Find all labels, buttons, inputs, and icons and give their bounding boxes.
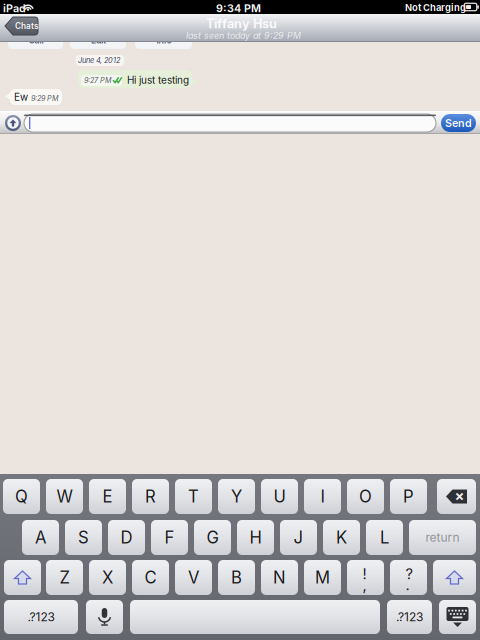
staticText: R <box>145 486 156 507</box>
staticText: E <box>102 486 112 507</box>
button[interactable]: Send <box>441 114 476 132</box>
button[interactable]: Call <box>8 34 63 49</box>
staticText: Send <box>445 116 472 129</box>
staticText: Q <box>15 486 28 507</box>
button[interactable]: R <box>132 479 169 514</box>
button[interactable]: Chats <box>5 17 38 35</box>
button[interactable]: Y <box>218 479 255 514</box>
button[interactable]: Delete <box>437 479 476 514</box>
button[interactable]: Shift <box>4 560 41 595</box>
staticText: G <box>206 527 218 548</box>
button[interactable]: Z <box>46 560 83 595</box>
button[interactable]: Hide Keyboard <box>439 600 476 634</box>
staticText: J <box>293 527 303 548</box>
button[interactable]: H <box>237 520 274 555</box>
staticText: . <box>405 576 409 594</box>
button[interactable]: S <box>65 520 102 555</box>
button[interactable]: ? <box>390 560 427 595</box>
button[interactable]: .?123 <box>387 600 432 634</box>
staticText: A <box>35 527 46 548</box>
button[interactable]: Info <box>135 34 192 49</box>
staticText: K <box>336 527 347 548</box>
staticText: T <box>188 486 199 507</box>
staticText: V <box>188 567 199 588</box>
button[interactable]: K <box>323 520 360 555</box>
button[interactable]: P <box>390 479 427 514</box>
button[interactable]: X <box>89 560 126 595</box>
staticText: iPad <box>3 2 26 15</box>
button[interactable]: ! <box>347 560 384 595</box>
staticText: F <box>164 527 174 548</box>
button[interactable]: G <box>194 520 231 555</box>
staticText: .?123 <box>27 610 54 624</box>
staticText: P <box>403 486 414 507</box>
button[interactable]: V <box>175 560 212 595</box>
button[interactable]: U <box>261 479 298 514</box>
button[interactable]: D <box>108 520 145 555</box>
staticText: N <box>273 567 286 588</box>
staticText: 9:27 PM <box>84 76 112 85</box>
button[interactable]: F <box>151 520 188 555</box>
button[interactable]: W <box>46 479 83 514</box>
staticText: 9:34 PM <box>216 2 261 15</box>
staticText: Edit <box>91 35 106 46</box>
staticText: W <box>56 486 72 507</box>
staticText: 9:29 PM <box>31 94 59 103</box>
button[interactable]: I <box>304 479 341 514</box>
staticText: D <box>120 527 132 548</box>
button[interactable] <box>130 600 380 634</box>
staticText: Not Charging <box>405 2 466 13</box>
staticText: Hi just testing <box>127 74 189 86</box>
button[interactable]: J <box>280 520 317 555</box>
button[interactable]: C <box>132 560 169 595</box>
staticText: M <box>315 567 330 588</box>
button[interactable]: L <box>366 520 403 555</box>
button[interactable]: B <box>218 560 255 595</box>
staticText: L <box>380 527 389 548</box>
button[interactable]: Shift <box>433 560 476 595</box>
button[interactable]: Edit <box>70 34 126 49</box>
staticText: return <box>425 530 459 545</box>
button[interactable]: T <box>175 479 212 514</box>
staticText: I <box>320 486 324 507</box>
staticText: ? <box>405 565 412 583</box>
staticText: U <box>273 486 285 507</box>
staticText: Y <box>231 486 242 507</box>
button[interactable]: Q <box>3 479 40 514</box>
staticText: B <box>231 567 242 588</box>
staticText: X <box>102 567 113 588</box>
button[interactable]: O <box>347 479 384 514</box>
button[interactable]: .?123 <box>4 600 78 634</box>
staticText: Call <box>28 35 43 46</box>
button[interactable]: return <box>409 520 476 555</box>
staticText: Chats <box>15 21 39 31</box>
button[interactable]: A <box>22 520 59 555</box>
button[interactable]: E <box>89 479 126 514</box>
button[interactable]: N <box>261 560 298 595</box>
staticText: Z <box>59 567 69 588</box>
staticText: .?123 <box>396 610 423 624</box>
staticText: × <box>454 487 464 504</box>
staticText: Ew <box>14 91 28 103</box>
button[interactable]: Dictate <box>86 600 123 634</box>
staticText: Info <box>156 35 171 46</box>
staticText: ! <box>362 565 366 583</box>
staticText: O <box>359 486 372 507</box>
staticText: last seen today at 9:29 PM <box>186 30 301 41</box>
button[interactable]: Attach <box>5 115 21 131</box>
staticText: , <box>362 576 366 594</box>
staticText: S <box>78 527 89 548</box>
staticText: H <box>249 527 261 548</box>
staticText: June 4, 2012 <box>78 56 120 65</box>
staticText: C <box>144 567 156 588</box>
button[interactable]: M <box>304 560 341 595</box>
staticText: Tiffany Hsu <box>206 16 277 31</box>
